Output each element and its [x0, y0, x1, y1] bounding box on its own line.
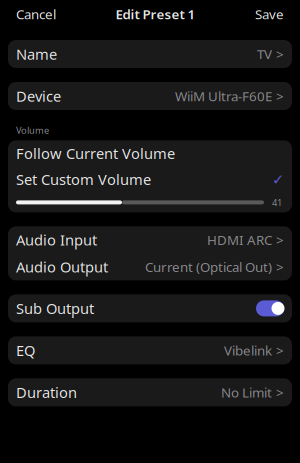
staticText: Save [255, 5, 284, 23]
staticText: ✓ [272, 171, 284, 188]
button[interactable]: Sub Output [8, 294, 292, 322]
staticText: Set Custom Volume [16, 170, 151, 189]
staticText: EQ [16, 341, 35, 360]
staticText: Edit Preset 1 [115, 5, 195, 23]
staticText: Vibelink [224, 341, 272, 359]
staticText: > [276, 383, 284, 401]
button[interactable]: Device [8, 82, 292, 110]
staticText: Volume [16, 124, 49, 136]
button[interactable]: EQ [8, 336, 292, 364]
staticText: > [276, 45, 284, 63]
staticText: Name [16, 44, 57, 64]
button[interactable]: Cancel [10, 1, 62, 27]
button[interactable]: Set Custom Volume [8, 166, 292, 192]
staticText: > [276, 231, 284, 249]
staticText: > [276, 87, 284, 105]
staticText: No Limit [221, 383, 272, 401]
staticText: Cancel [16, 5, 56, 23]
staticText: Duration [16, 383, 77, 402]
button[interactable]: Duration [8, 378, 292, 406]
staticText: Device [16, 86, 61, 106]
button[interactable]: Name [8, 40, 292, 68]
staticText: > [276, 258, 284, 276]
staticText: Current (Optical Out) [145, 258, 272, 276]
staticText: Audio Input [16, 230, 97, 250]
staticText: HDMI ARC [207, 231, 272, 249]
button[interactable]: Save [249, 1, 290, 27]
button[interactable]: Audio Output [8, 253, 292, 280]
staticText: Follow Current Volume [16, 144, 175, 163]
staticText: 41 [272, 196, 282, 209]
staticText: Sub Output [16, 299, 94, 318]
staticText: WiiM Ultra-F60E [175, 87, 272, 105]
staticText: Audio Output [16, 257, 108, 277]
staticText: > [276, 341, 284, 359]
staticText: TV [257, 45, 272, 63]
button[interactable]: Follow Current Volume [8, 140, 292, 166]
button[interactable]: Audio Input [8, 226, 292, 253]
